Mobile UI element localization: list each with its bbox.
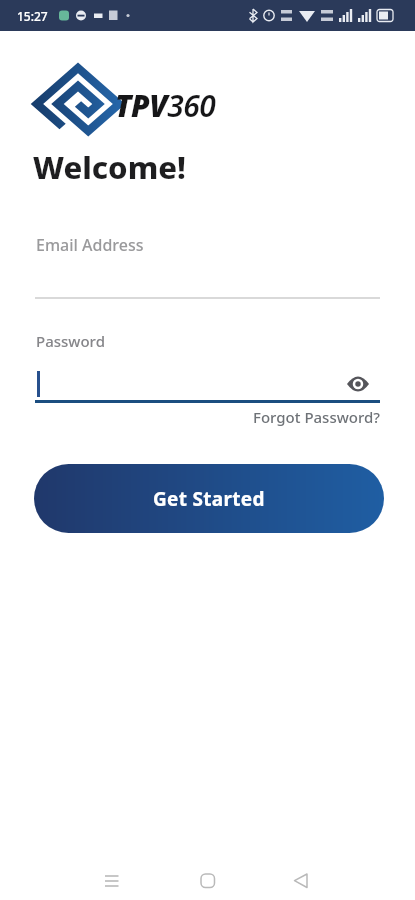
staticText: Forgot Password? xyxy=(253,407,381,427)
staticText: Get Started xyxy=(153,486,265,512)
button[interactable] xyxy=(191,864,225,898)
staticText: 15:27 xyxy=(17,8,48,24)
staticText: TPV360 xyxy=(115,85,216,126)
button[interactable]: Forgot Password? xyxy=(0,407,415,427)
button[interactable] xyxy=(95,864,129,898)
staticText: Welcome! xyxy=(33,146,186,188)
button[interactable]: Get Started xyxy=(34,464,384,533)
button[interactable] xyxy=(284,864,318,898)
button[interactable] xyxy=(347,376,369,392)
staticText: Password xyxy=(36,331,105,351)
staticText: Email Address xyxy=(36,234,144,256)
